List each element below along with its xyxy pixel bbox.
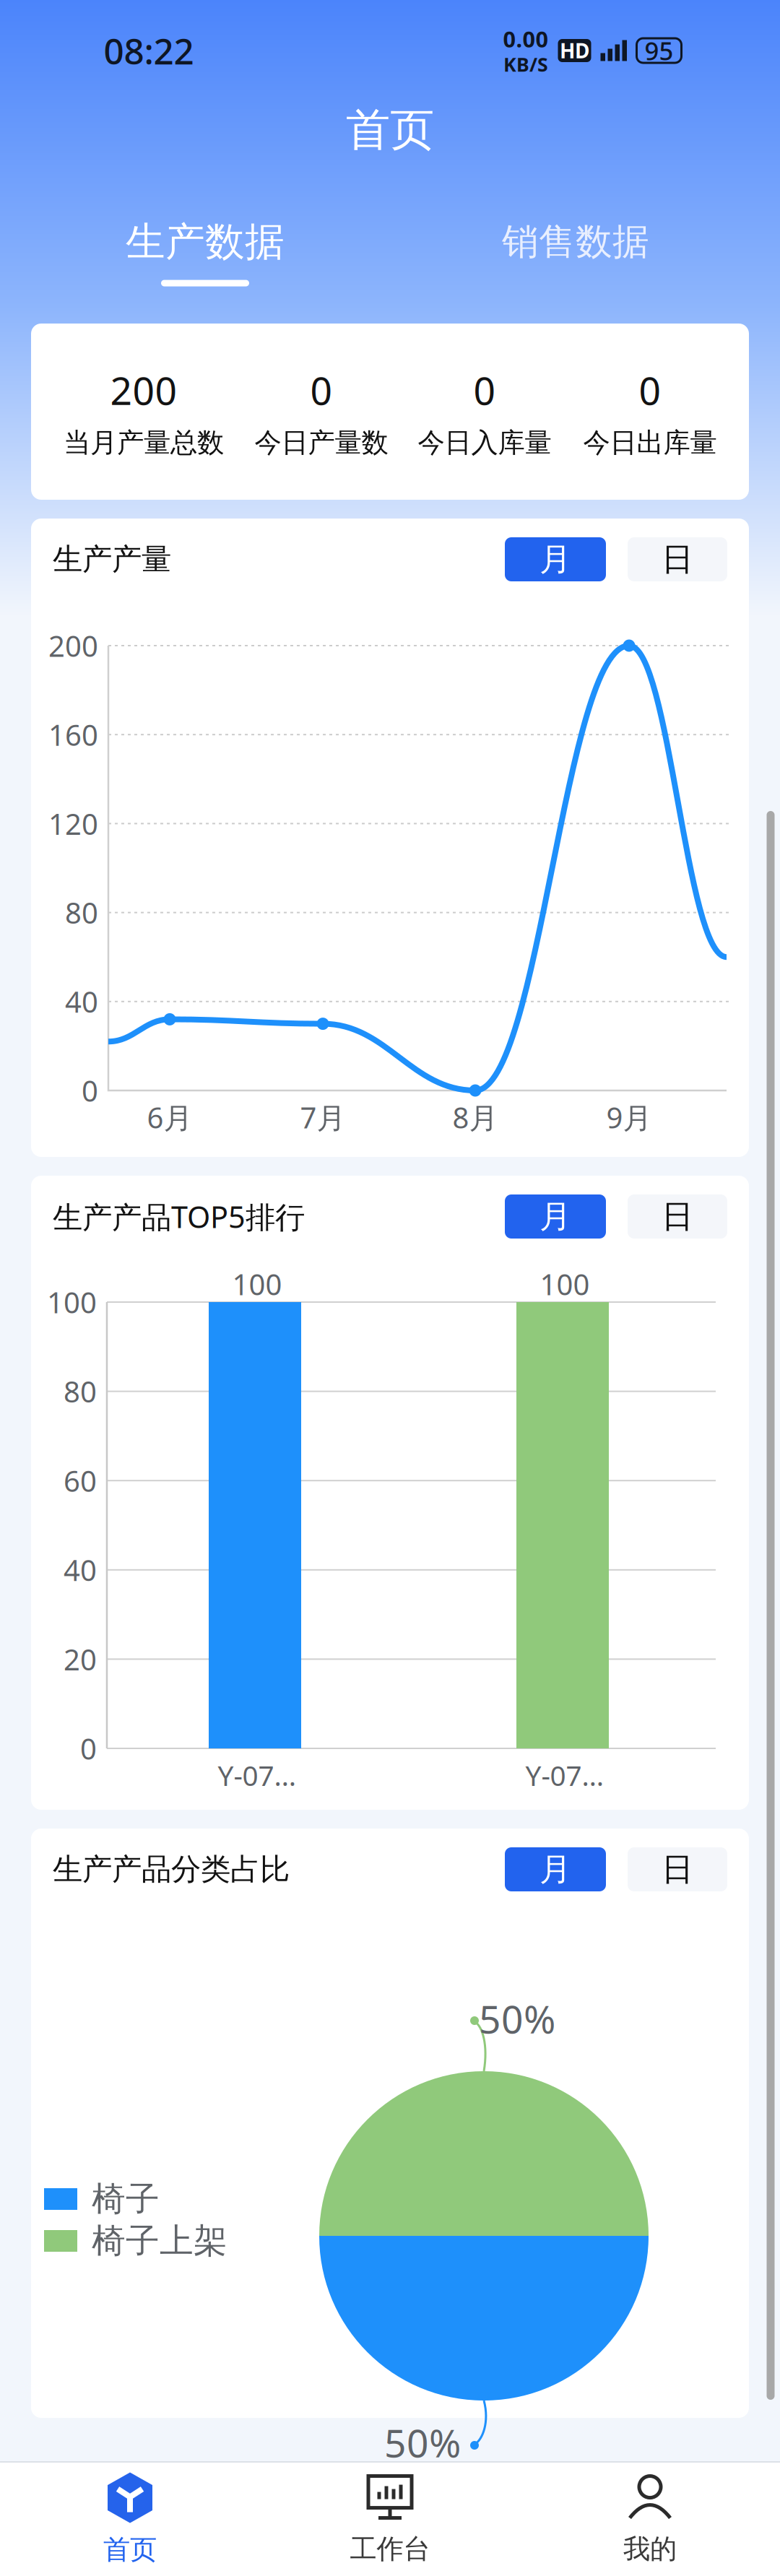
staticText: Y-07… — [218, 1757, 296, 1794]
staticText: 生产数据 — [126, 218, 285, 266]
staticText: 月 — [539, 1850, 571, 1889]
staticText: 40 — [65, 982, 98, 1021]
staticText: 生产产品分类占比 — [53, 1851, 290, 1888]
button[interactable]: 日 — [628, 537, 727, 581]
staticText: 月 — [539, 1197, 571, 1236]
staticText: 月 — [539, 540, 571, 579]
button[interactable]: 月 — [505, 537, 606, 581]
staticText: 首页 — [346, 103, 434, 157]
staticText: 120 — [48, 804, 98, 843]
staticText: 0 — [80, 1729, 97, 1768]
staticText: 当月产量总数 — [64, 426, 224, 459]
staticText: KB/S — [503, 51, 548, 77]
staticText: 0 — [310, 364, 333, 416]
staticText: 7月 — [300, 1098, 346, 1136]
staticText: 100 — [232, 1265, 282, 1303]
staticText: HD — [560, 37, 589, 64]
button[interactable]: 生产数据 — [75, 212, 335, 292]
button[interactable]: 日 — [628, 1194, 727, 1239]
button[interactable]: 日 — [628, 1847, 727, 1891]
staticText: 6月 — [147, 1098, 192, 1136]
staticText: 日 — [662, 1197, 693, 1236]
staticText: 95 — [645, 34, 673, 67]
staticText: 9月 — [606, 1098, 652, 1136]
staticText: 160 — [48, 715, 98, 754]
staticText: 80 — [65, 893, 98, 932]
staticText: 0 — [639, 364, 661, 416]
button[interactable]: 销售数据 — [446, 212, 706, 292]
staticText: 50% — [384, 2417, 461, 2468]
staticText: 100 — [540, 1265, 590, 1303]
button[interactable]: 首页 — [0, 2472, 260, 2566]
staticText: 椅子上架 — [92, 2220, 227, 2262]
button[interactable]: 月 — [505, 1847, 606, 1891]
button[interactable]: 我的 — [520, 2473, 780, 2566]
staticText: 工作台 — [350, 2532, 430, 2566]
staticText: 椅子 — [92, 2178, 160, 2220]
staticText: 08:22 — [104, 27, 194, 74]
staticText: 80 — [64, 1372, 97, 1410]
staticText: 生产产品TOP5排行 — [53, 1197, 305, 1236]
staticText: 20 — [64, 1640, 97, 1678]
staticText: 200 — [110, 364, 177, 416]
staticText: 40 — [64, 1551, 97, 1589]
button[interactable]: 月 — [505, 1194, 606, 1239]
staticText: 100 — [47, 1283, 97, 1321]
staticText: 0.00 — [503, 24, 549, 54]
staticText: 今日入库量 — [418, 426, 551, 459]
staticText: 日 — [662, 540, 693, 579]
staticText: 0 — [473, 364, 496, 416]
staticText: 日 — [662, 1850, 693, 1889]
staticText: 销售数据 — [502, 219, 649, 264]
staticText: 今日产量数 — [255, 426, 388, 459]
staticText: 200 — [48, 626, 98, 665]
staticText: 首页 — [103, 2533, 157, 2566]
staticText: 8月 — [452, 1098, 498, 1136]
staticText: Y-07… — [525, 1757, 604, 1794]
staticText: 我的 — [623, 2532, 677, 2566]
staticText: 0 — [82, 1071, 98, 1110]
staticText: 60 — [64, 1461, 97, 1500]
staticText: 今日出库量 — [583, 426, 717, 459]
staticText: 50% — [479, 1993, 555, 2044]
staticText: 生产产量 — [53, 541, 171, 578]
button[interactable]: 工作台 — [260, 2473, 520, 2566]
